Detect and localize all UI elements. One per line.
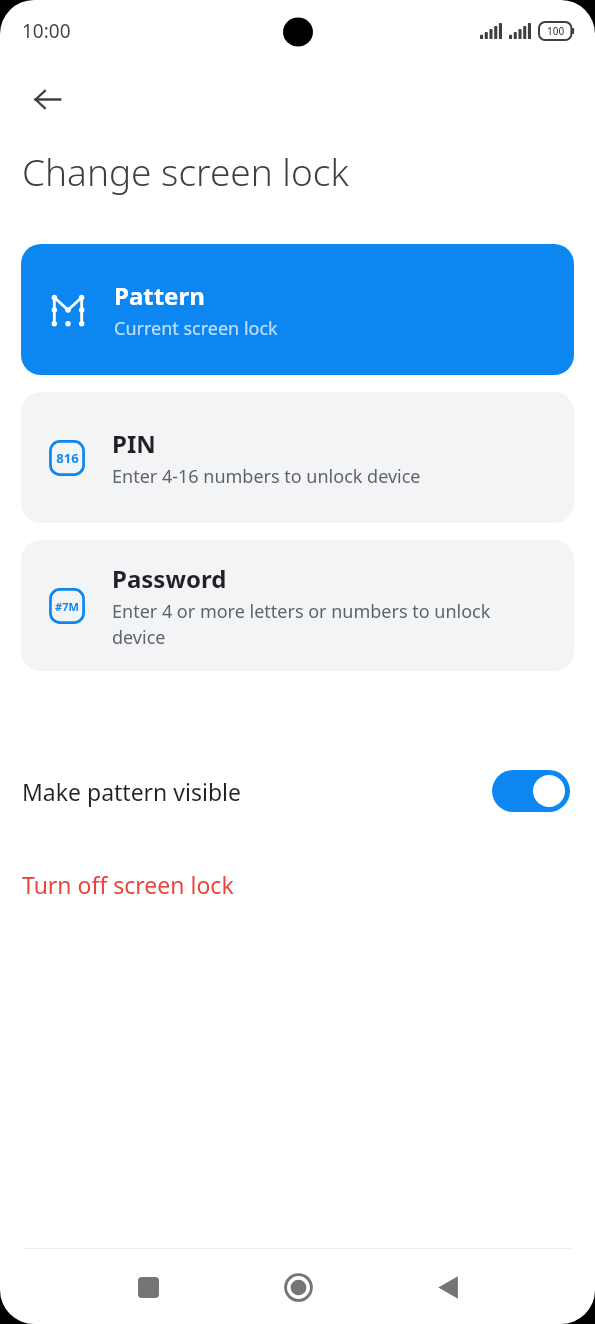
button[interactable]: Turn off screen lock <box>0 865 595 904</box>
staticText: Make pattern visible <box>22 776 241 807</box>
button[interactable]: 816 <box>21 392 574 523</box>
button[interactable]: Back <box>22 74 72 124</box>
staticText: Current screen lock <box>114 316 278 341</box>
button[interactable]: Recent apps <box>73 1257 223 1317</box>
staticText: Pattern <box>114 279 205 312</box>
staticText: Turn off screen lock <box>22 869 234 900</box>
button[interactable]: Back <box>373 1257 523 1317</box>
staticText: Enter 4 or more letters or numbers to un… <box>112 599 546 649</box>
button[interactable]: #7M <box>21 540 574 671</box>
button[interactable]: Pattern <box>21 244 574 375</box>
staticText: PIN <box>112 427 156 460</box>
staticText: Enter 4-16 numbers to unlock device <box>112 464 421 489</box>
staticText: Password <box>112 562 227 595</box>
button[interactable]: Home <box>223 1257 373 1317</box>
staticText: 816 <box>56 449 79 467</box>
staticText: 10:00 <box>22 18 71 44</box>
staticText: Change screen lock <box>22 146 349 196</box>
other: Make pattern visible toggle <box>492 770 570 812</box>
staticText: 100 <box>547 24 565 38</box>
button[interactable]: Make pattern visible <box>0 764 595 818</box>
staticText: #7M <box>55 599 79 614</box>
